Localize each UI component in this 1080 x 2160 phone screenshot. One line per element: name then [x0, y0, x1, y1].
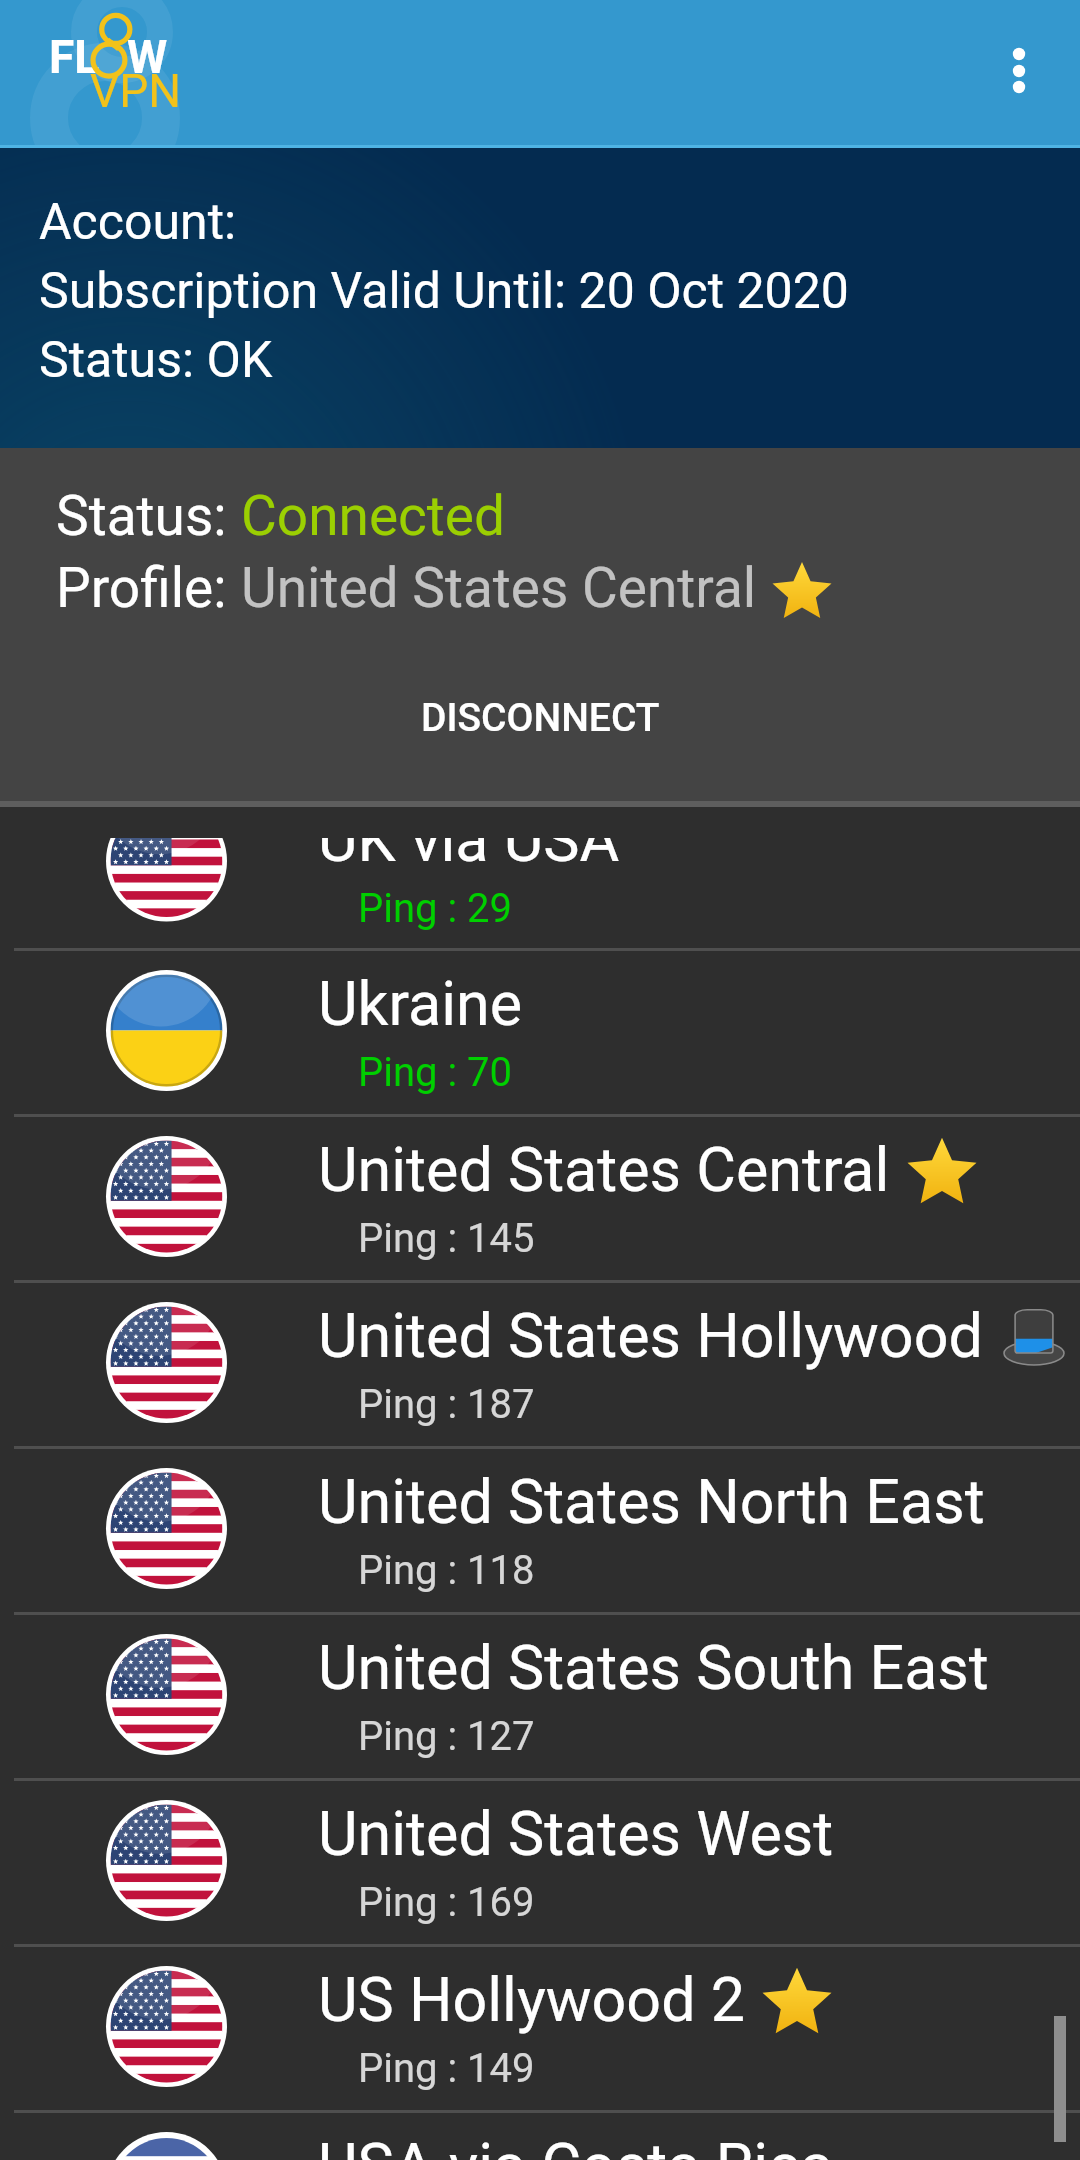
staticText: US Hollywood 2	[318, 1964, 745, 2035]
staticText: United States West	[318, 1798, 834, 1869]
staticText: DISCONNECT	[421, 695, 660, 741]
staticText: Ping : 187	[358, 1381, 535, 1428]
staticText: Status:	[56, 484, 241, 548]
staticText: Ping : 29	[358, 885, 513, 932]
staticText: Ping : 70	[358, 1049, 513, 1096]
button[interactable]: More options	[966, 0, 1080, 148]
button[interactable]: US Hollywood 2	[0, 1944, 1080, 2110]
staticText: United States Central	[318, 1134, 890, 1205]
staticText: UK via USA	[318, 838, 620, 875]
button[interactable]: United States Central	[0, 1114, 1080, 1280]
staticText: USA via Costa Rica	[318, 2130, 834, 2160]
staticText: Ping : 127	[358, 1713, 535, 1760]
button[interactable]: Ukraine	[0, 948, 1080, 1114]
staticText: United States Hollywood	[318, 1300, 983, 1371]
staticText: VPN	[90, 64, 182, 118]
button[interactable]: United States West	[0, 1778, 1080, 1944]
button[interactable]: USA via Costa Rica	[0, 2110, 1080, 2160]
button[interactable]: UK via USA	[0, 810, 1080, 948]
staticText: Ping : 145	[358, 1215, 535, 1262]
staticText: United States North East	[318, 1466, 985, 1537]
staticText: FL	[49, 30, 100, 84]
staticText: Ping : 149	[358, 2045, 535, 2092]
staticText: Status: OK	[39, 331, 273, 390]
staticText: Profile:	[56, 556, 241, 620]
staticText: Ukraine	[318, 968, 522, 1039]
staticText: United States Central	[241, 556, 757, 620]
staticText: Subscription Valid Until: 20 Oct 2020	[39, 262, 849, 321]
staticText: W	[127, 30, 168, 84]
button[interactable]: United States South East	[0, 1612, 1080, 1778]
staticText: Ping : 169	[358, 1879, 535, 1926]
staticText: United States South East	[318, 1632, 989, 1703]
staticText: Account:	[39, 193, 237, 252]
staticText: Ping : 118	[358, 1547, 535, 1594]
button[interactable]: United States Hollywood	[0, 1280, 1080, 1446]
button[interactable]: DISCONNECT	[0, 670, 1080, 766]
button[interactable]: United States North East	[0, 1446, 1080, 1612]
staticText: Connected	[241, 484, 506, 548]
